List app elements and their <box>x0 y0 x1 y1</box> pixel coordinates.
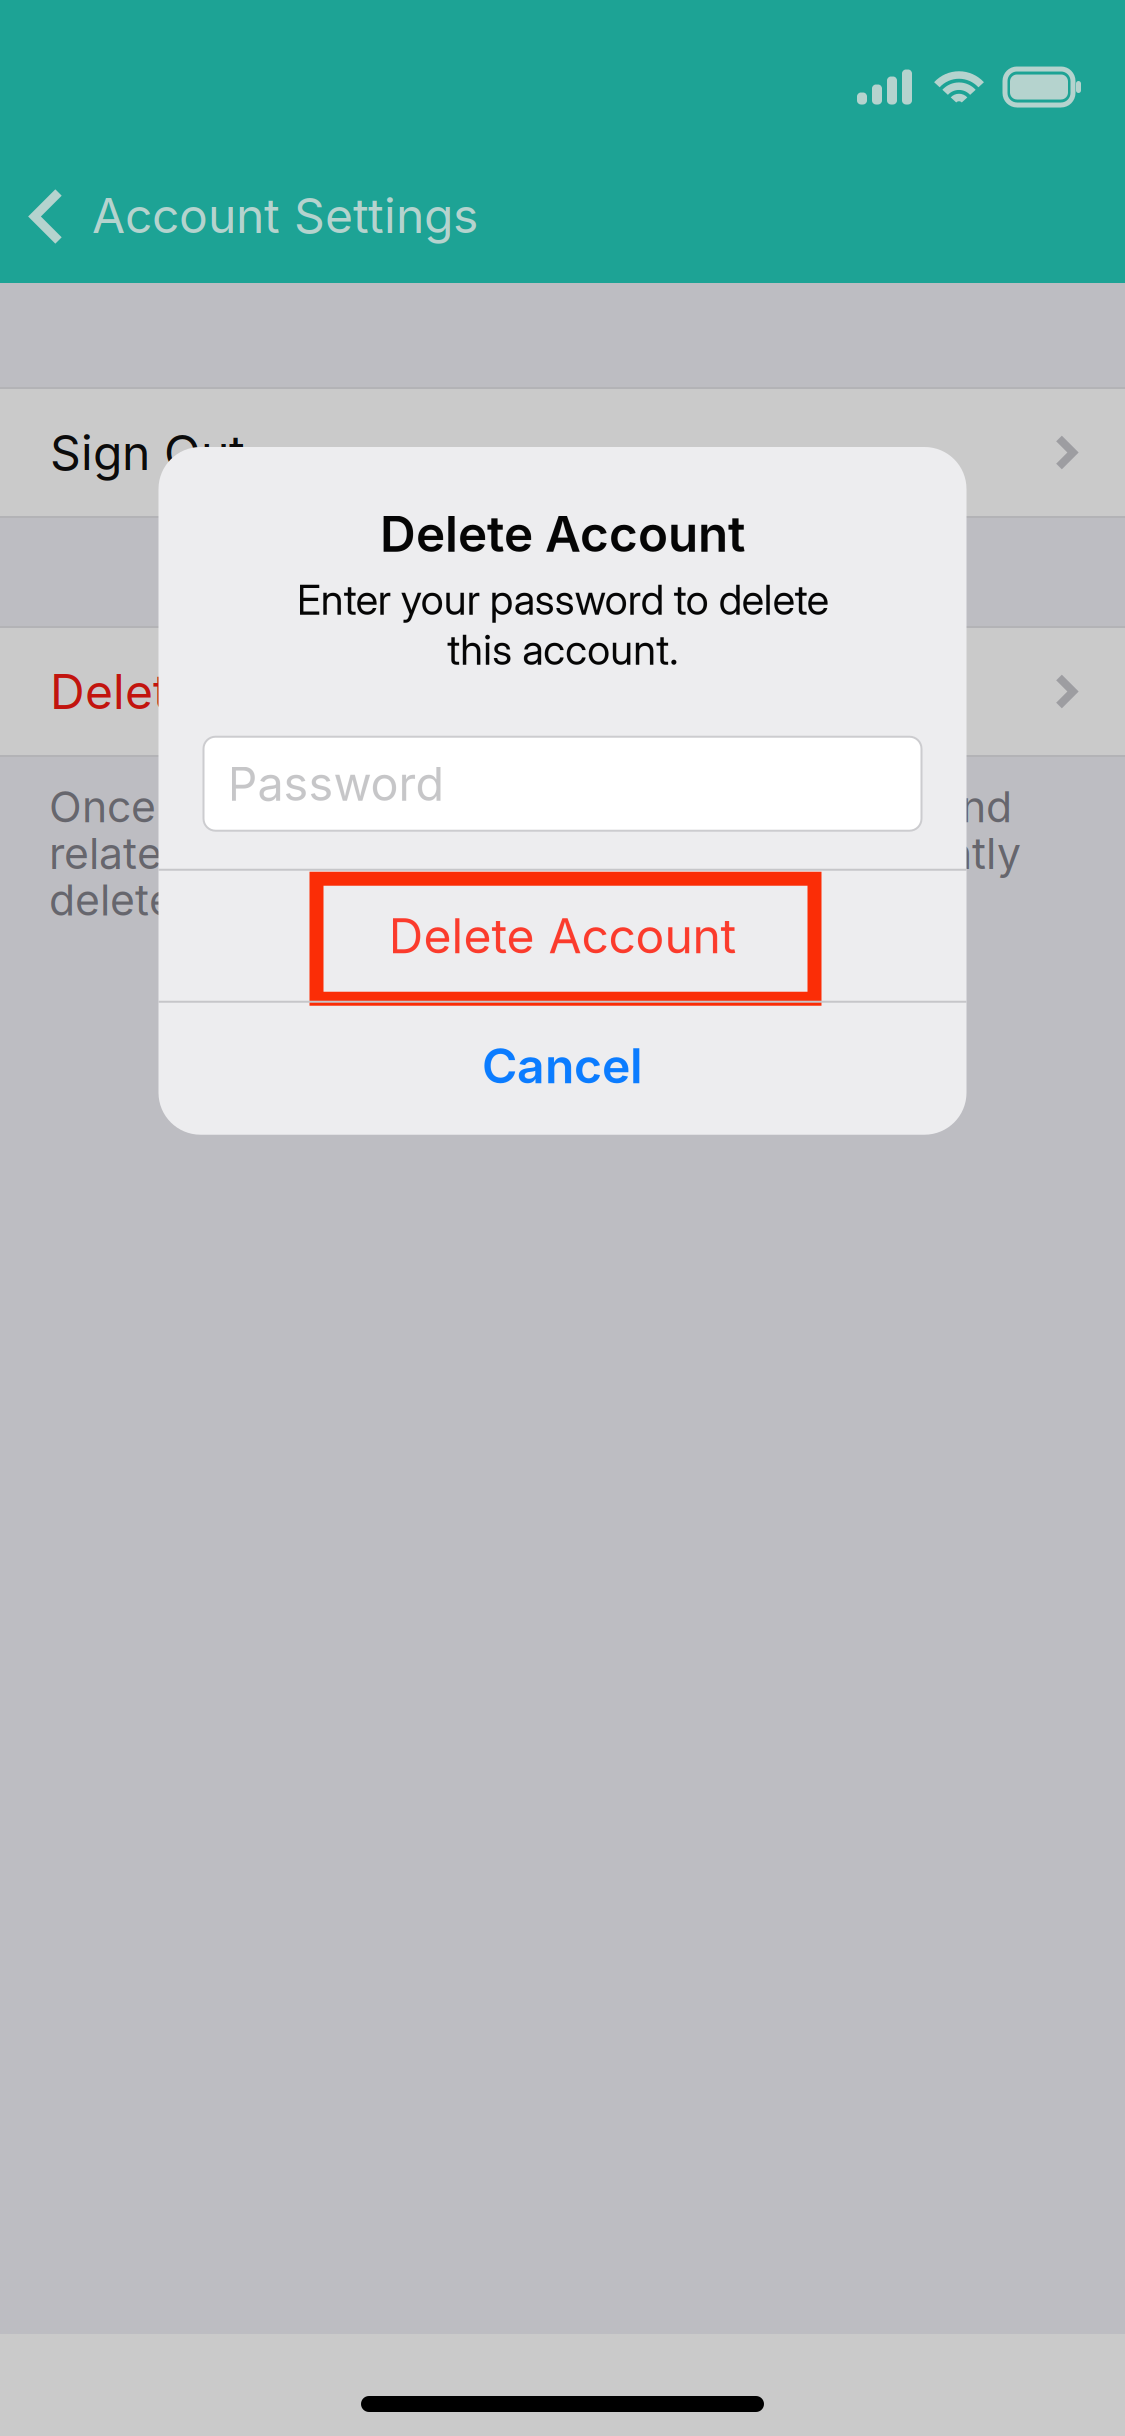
staticText: Sign Out <box>50 423 245 482</box>
staticText: Account Settings <box>92 186 478 245</box>
button[interactable]: Sign Out <box>0 387 1125 518</box>
staticText: Password <box>227 755 444 812</box>
staticText: Cancel <box>482 1037 643 1095</box>
staticText: Delete Account <box>50 662 398 721</box>
staticText: Delete Account <box>388 907 736 965</box>
button[interactable]: Back <box>0 164 89 269</box>
button[interactable]: Delete Account <box>0 626 1125 757</box>
staticText: Once you delete your account, all your d… <box>49 781 1021 926</box>
button[interactable]: Cancel <box>158 1003 966 1135</box>
staticText: Delete Account <box>380 504 745 564</box>
button[interactable]: Delete Account <box>158 871 966 1001</box>
staticText: Enter your password to delete this accou… <box>296 575 828 675</box>
